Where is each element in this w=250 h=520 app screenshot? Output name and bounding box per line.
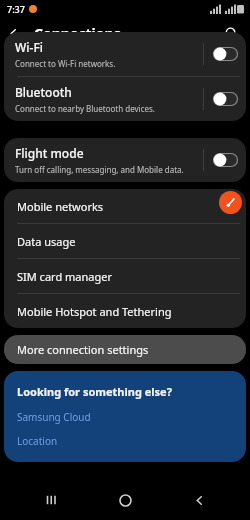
button[interactable]: Toggle, off: [213, 153, 238, 167]
button[interactable]: Search: [219, 21, 243, 45]
button[interactable]: Home: [103, 480, 147, 520]
staticText: Flight mode: [15, 145, 84, 161]
button[interactable]: Back: [177, 480, 221, 520]
button[interactable]: Flight mode: [4, 138, 246, 182]
button[interactable]: SIM card manager: [4, 259, 246, 293]
staticText: Turn off calling, messaging, and Mobile …: [15, 164, 184, 175]
button[interactable]: Edit: [219, 191, 242, 214]
staticText: Bluetooth: [15, 84, 72, 100]
button[interactable]: Mobile Hotspot and Tethering: [4, 294, 246, 328]
staticText: Data usage: [17, 234, 76, 249]
button[interactable]: Back: [0, 20, 26, 46]
staticText: Connect to Wi-Fi networks.: [15, 58, 116, 69]
button[interactable]: Toggle, off: [213, 92, 238, 106]
button[interactable]: Bluetooth: [4, 77, 246, 121]
staticText: Connect to nearby Bluetooth devices.: [15, 103, 156, 114]
staticText: 7:37: [7, 3, 25, 15]
button[interactable]: Wi-Fi: [4, 32, 246, 76]
button[interactable]: Mobile networks: [4, 189, 246, 223]
staticText: Samsung Cloud: [17, 410, 91, 424]
staticText: More connection settings: [17, 342, 149, 357]
staticText: Looking for something else?: [17, 384, 172, 399]
staticText: Mobile Hotspot and Tethering: [17, 304, 172, 319]
button[interactable]: Samsung Cloud: [17, 410, 234, 424]
staticText: Mobile networks: [17, 199, 104, 214]
staticText: Connections: [34, 24, 121, 43]
button[interactable]: Toggle, off: [213, 47, 238, 61]
button[interactable]: More connection settings: [4, 335, 246, 364]
staticText: Wi-Fi: [15, 39, 43, 55]
button[interactable]: Location: [17, 434, 234, 448]
staticText: Location: [17, 434, 58, 448]
button[interactable]: Recent apps: [30, 480, 74, 520]
button[interactable]: Data usage: [4, 224, 246, 258]
staticText: SIM card manager: [17, 269, 112, 284]
